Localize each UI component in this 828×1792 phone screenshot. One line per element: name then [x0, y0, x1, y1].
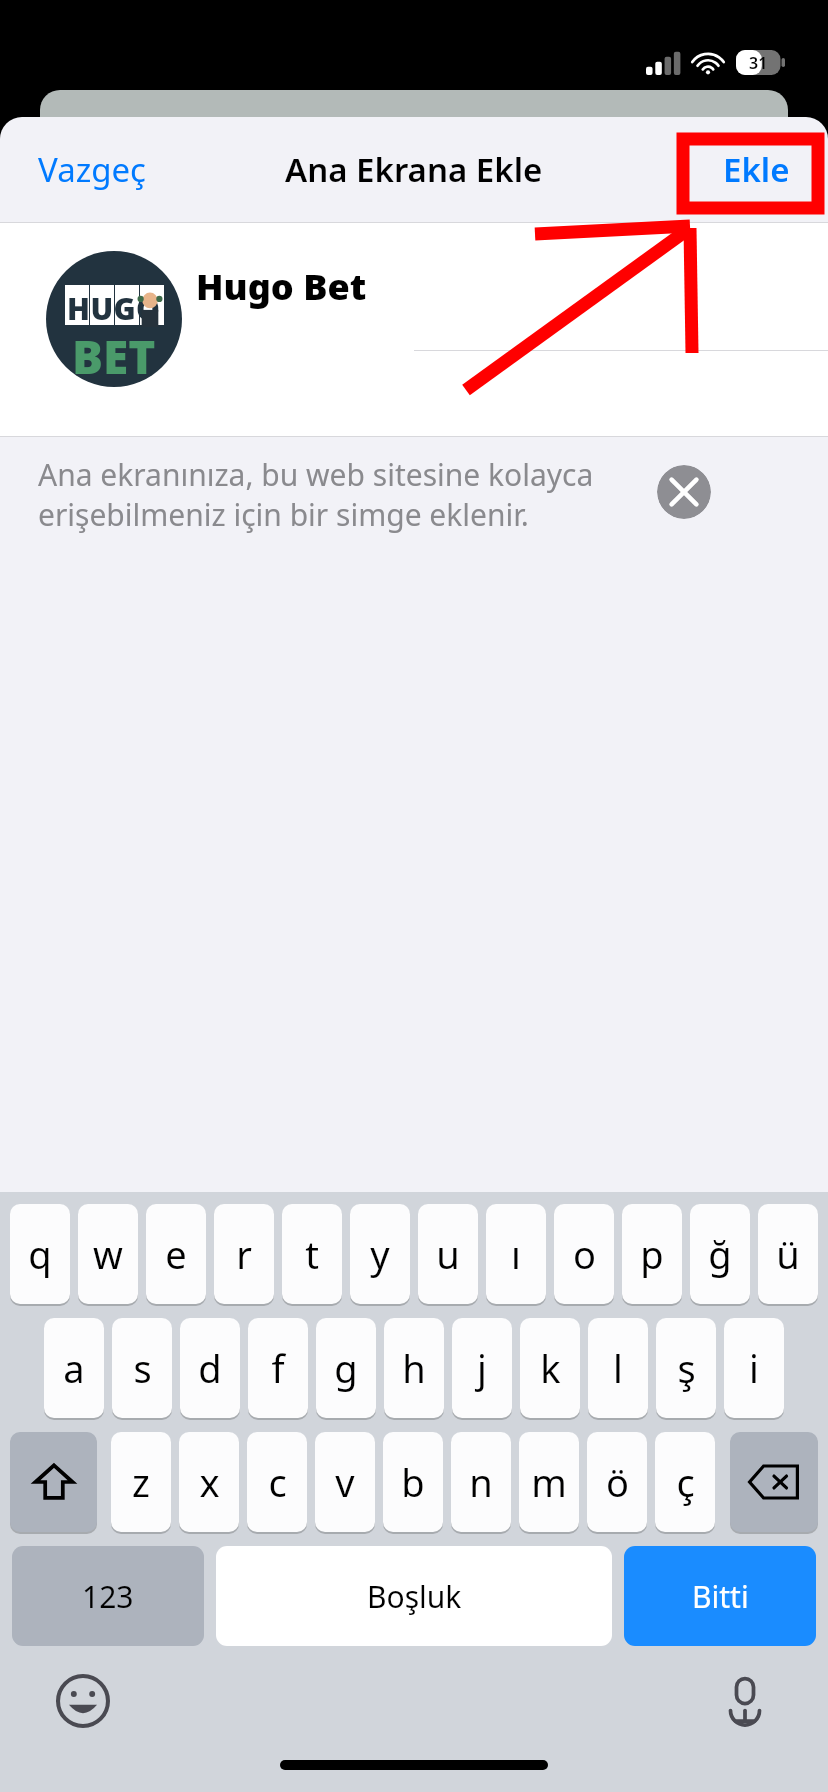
button[interactable]: ş	[656, 1318, 716, 1418]
button[interactable]: 123	[12, 1546, 204, 1646]
button[interactable]: c	[247, 1432, 307, 1532]
staticText: BET	[72, 325, 156, 388]
staticText: ç	[676, 1456, 695, 1508]
staticText: 31	[749, 52, 768, 74]
staticText: Ana Ekrana Ekle	[285, 147, 543, 192]
staticText: Hugo Bet	[196, 262, 367, 311]
button[interactable]: t	[282, 1204, 342, 1304]
staticText: g	[334, 1342, 358, 1394]
staticText: w	[93, 1228, 123, 1280]
staticText: y	[370, 1228, 390, 1280]
staticText: t	[305, 1228, 319, 1280]
button[interactable]: d	[180, 1318, 240, 1418]
staticText: q	[28, 1228, 52, 1280]
button[interactable]: Vazgeç	[22, 137, 162, 202]
staticText: 123	[82, 1576, 134, 1617]
button[interactable]: a	[44, 1318, 104, 1418]
staticText: ğ	[708, 1228, 732, 1280]
button[interactable]: ü	[758, 1204, 818, 1304]
staticText: i	[749, 1342, 759, 1394]
staticText: ü	[776, 1228, 800, 1280]
staticText: s	[133, 1342, 152, 1394]
button[interactable]: g	[316, 1318, 376, 1418]
button[interactable]: Bitti	[624, 1546, 816, 1646]
button[interactable]: x	[179, 1432, 239, 1532]
button[interactable]: Shift	[10, 1432, 97, 1532]
staticText: Ekle	[723, 147, 790, 192]
staticText: Bitti	[692, 1576, 749, 1617]
staticText: j	[477, 1342, 487, 1394]
button[interactable]: l	[588, 1318, 648, 1418]
button[interactable]: j	[452, 1318, 512, 1418]
staticText: ı	[511, 1228, 521, 1280]
button[interactable]: u	[418, 1204, 478, 1304]
button[interactable]: Ekle	[707, 137, 806, 202]
button[interactable]: n	[451, 1432, 511, 1532]
button[interactable]: Dikte	[714, 1670, 776, 1732]
button[interactable]: r	[214, 1204, 274, 1304]
button[interactable]: Temizle	[657, 465, 711, 519]
button[interactable]: Geri sil	[730, 1432, 818, 1532]
button[interactable]: e	[146, 1204, 206, 1304]
staticText: e	[165, 1228, 187, 1280]
button[interactable]: h	[384, 1318, 444, 1418]
button[interactable]: Boşluk	[216, 1546, 612, 1646]
staticText: v	[335, 1456, 355, 1508]
staticText: a	[63, 1342, 85, 1394]
button[interactable]: k	[520, 1318, 580, 1418]
staticText: c	[268, 1456, 287, 1508]
button[interactable]: p	[622, 1204, 682, 1304]
button[interactable]: o	[554, 1204, 614, 1304]
staticText: x	[199, 1456, 220, 1508]
staticText: r	[236, 1228, 252, 1280]
button[interactable]: z	[111, 1432, 171, 1532]
button[interactable]: ğ	[690, 1204, 750, 1304]
staticText: HUGO	[67, 288, 161, 329]
staticText: ş	[677, 1342, 696, 1394]
staticText: Boşluk	[367, 1576, 462, 1617]
staticText: u	[436, 1228, 460, 1280]
button[interactable]: ç	[655, 1432, 715, 1532]
staticText: f	[271, 1342, 285, 1394]
staticText: m	[531, 1456, 567, 1508]
button[interactable]: v	[315, 1432, 375, 1532]
staticText: o	[573, 1228, 596, 1280]
staticText: Vazgeç	[38, 147, 146, 192]
button[interactable]: f	[248, 1318, 308, 1418]
staticText: z	[132, 1456, 150, 1508]
staticText: b	[401, 1456, 425, 1508]
button[interactable]: y	[350, 1204, 410, 1304]
staticText: ö	[606, 1456, 629, 1508]
button[interactable]: ı	[486, 1204, 546, 1304]
staticText: l	[613, 1342, 623, 1394]
staticText: d	[198, 1342, 222, 1394]
button[interactable]: ö	[587, 1432, 647, 1532]
staticText: k	[540, 1342, 561, 1394]
button[interactable]: s	[112, 1318, 172, 1418]
button[interactable]: q	[10, 1204, 70, 1304]
button[interactable]: Emoji	[52, 1670, 114, 1732]
button[interactable]: b	[383, 1432, 443, 1532]
staticText: h	[402, 1342, 426, 1394]
button[interactable]: i	[724, 1318, 784, 1418]
staticText: p	[640, 1228, 664, 1280]
button[interactable]: m	[519, 1432, 579, 1532]
staticText: n	[469, 1456, 493, 1508]
button[interactable]: w	[78, 1204, 138, 1304]
staticText: Ana ekranınıza, bu web sitesine kolayca …	[38, 454, 708, 535]
